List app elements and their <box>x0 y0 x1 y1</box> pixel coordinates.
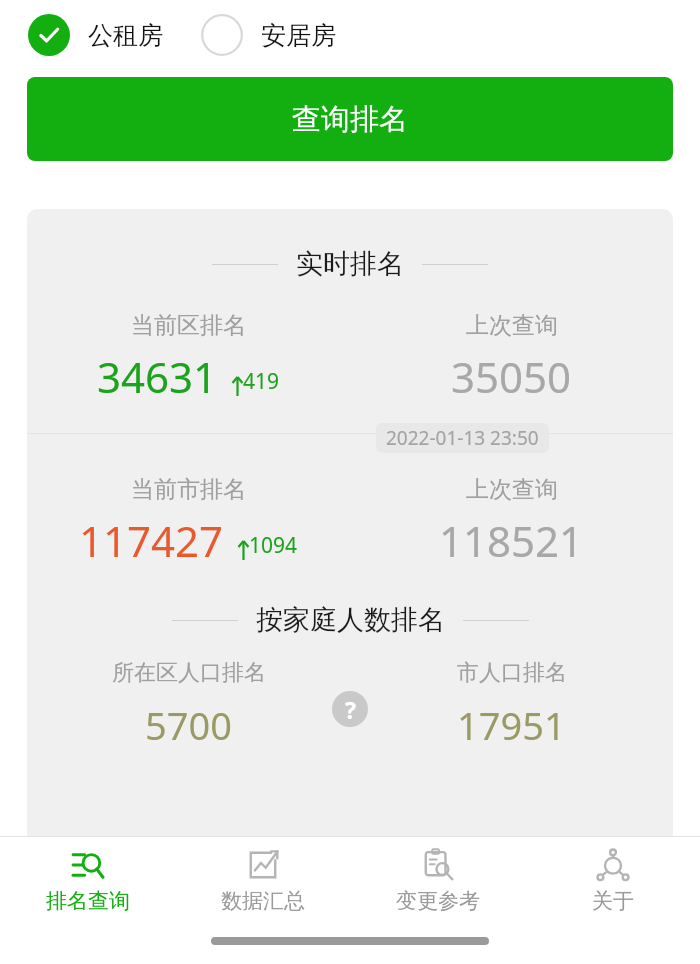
staticText: 上次查询 <box>466 311 558 340</box>
staticText: 实时排名 <box>296 247 404 281</box>
button[interactable]: 查询排名 <box>27 77 673 161</box>
staticText: 数据汇总 <box>221 888 305 914</box>
staticText: 市人口排名 <box>457 659 567 687</box>
staticText: 变更参考 <box>396 888 480 914</box>
staticText: 2022-01-13 23:50 <box>386 425 539 451</box>
button[interactable]: 安居房 <box>201 14 340 56</box>
button[interactable]: 排名查询 <box>0 842 175 920</box>
staticText: 5700 <box>145 699 232 751</box>
staticText: 所在区人口排名 <box>112 659 266 687</box>
staticText: 关于 <box>592 888 634 914</box>
staticText: 117427 <box>79 512 224 569</box>
staticText: 35050 <box>451 348 572 405</box>
staticText: 安居房 <box>261 20 336 51</box>
staticText: 排名查询 <box>46 888 130 914</box>
staticText: 上次查询 <box>466 475 558 504</box>
button[interactable]: 数据汇总 <box>175 842 350 920</box>
staticText: 118521 <box>439 512 584 569</box>
staticText: 34631 <box>97 348 218 405</box>
staticText: 419 <box>243 367 280 396</box>
staticText: 当前市排名 <box>131 475 246 504</box>
button[interactable]: 关于 <box>525 842 700 920</box>
staticText: 17951 <box>457 699 566 751</box>
staticText: 公租房 <box>88 20 163 51</box>
button[interactable]: 公租房 <box>28 14 167 56</box>
staticText: 查询排名 <box>292 101 408 138</box>
button[interactable]: 变更参考 <box>350 842 525 920</box>
staticText: ? <box>345 694 356 725</box>
staticText: 按家庭人数排名 <box>256 603 445 637</box>
staticText: 当前区排名 <box>131 311 246 340</box>
staticText: 1094 <box>249 531 298 560</box>
button[interactable]: Help <box>332 691 368 727</box>
